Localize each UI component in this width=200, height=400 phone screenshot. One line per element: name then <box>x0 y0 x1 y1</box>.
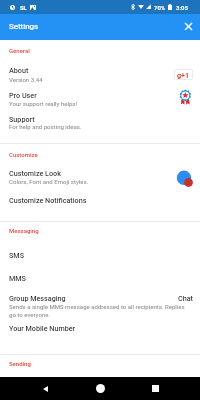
staticText: Your Mobile Number <box>9 324 76 332</box>
staticText: Customize <box>9 151 38 158</box>
staticText: Settings <box>9 22 39 31</box>
staticText: SMS <box>9 251 24 259</box>
button[interactable]: Chat <box>176 291 194 301</box>
button[interactable]: Recents <box>145 378 165 398</box>
staticText: SL <box>20 4 27 11</box>
staticText: General <box>9 47 30 54</box>
staticText: 70% <box>154 4 166 11</box>
button[interactable]: Pro badge <box>178 89 193 109</box>
staticText: Sending <box>9 360 31 367</box>
staticText: Customize Notifications <box>9 196 87 204</box>
button[interactable]: Google Plus One <box>174 69 193 80</box>
button[interactable]: Home <box>90 378 110 398</box>
staticText: Group Messaging <box>9 294 66 302</box>
staticText: Chat <box>178 294 193 302</box>
staticText: MMS <box>9 274 26 282</box>
staticText: Messaging <box>9 227 39 234</box>
staticText: Customize Look <box>9 169 61 177</box>
button[interactable]: Customize look <box>175 169 194 188</box>
button[interactable]: Close <box>179 17 198 36</box>
staticText: 3:05 <box>176 4 188 11</box>
staticText: Pro User <box>9 91 37 99</box>
staticText: Your support really helps! <box>9 100 78 107</box>
staticText: Support <box>9 115 35 123</box>
staticText: For help and posting ideas. <box>9 123 82 130</box>
staticText: g+1 <box>177 71 190 79</box>
staticText: Sends a single MMS message addressed to … <box>9 303 185 310</box>
staticText: Version 3.44 <box>9 76 43 83</box>
button[interactable]: Back <box>35 379 55 399</box>
staticText: About <box>9 66 29 74</box>
staticText: go to everyone. <box>9 311 50 318</box>
staticText: Colors, Font and Emoji styles. <box>9 178 89 185</box>
